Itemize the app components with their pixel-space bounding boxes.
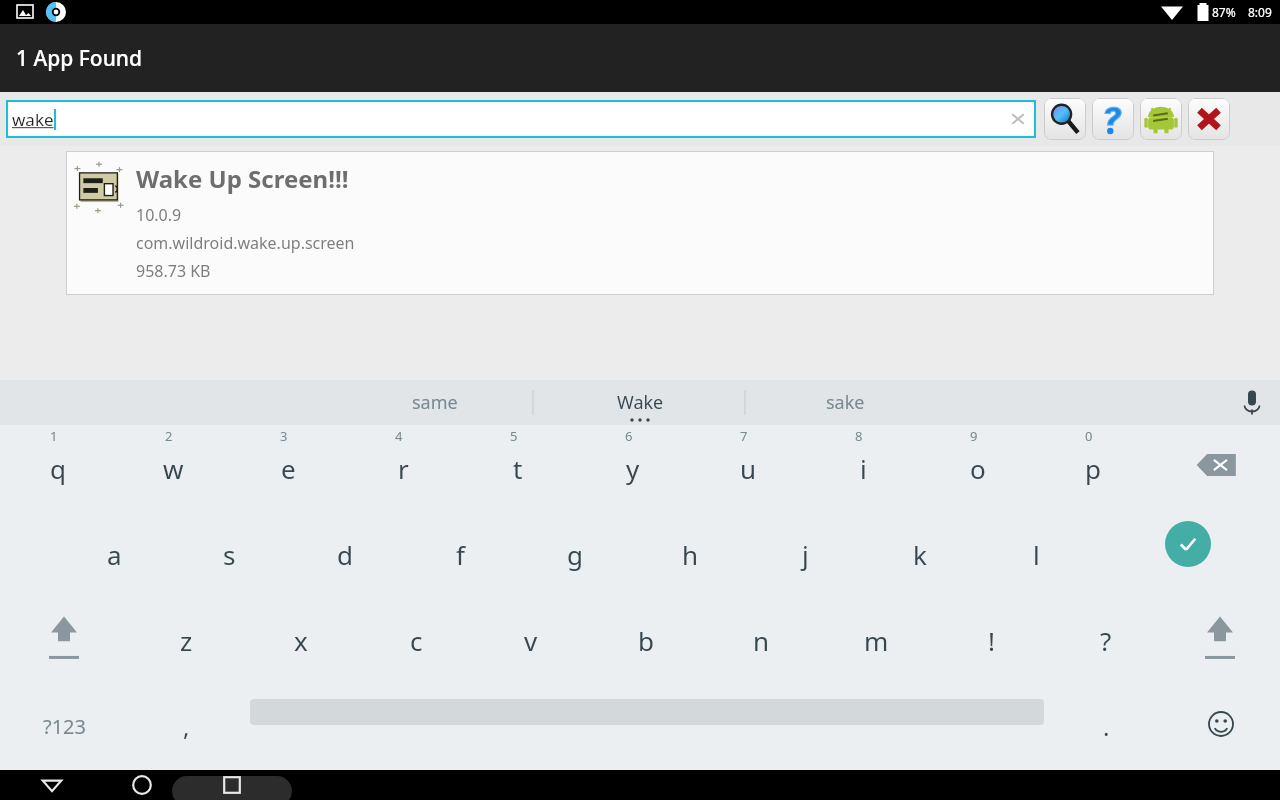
- button[interactable]: a: [76, 511, 152, 597]
- staticText: h: [682, 537, 699, 572]
- button[interactable]: d: [307, 511, 383, 597]
- staticText: 7: [740, 427, 748, 445]
- staticText: j: [802, 537, 809, 572]
- staticText: Wake: [617, 390, 664, 415]
- staticText: k: [913, 537, 927, 572]
- staticText: 1 App Found: [16, 44, 142, 73]
- staticText: 0: [1085, 427, 1093, 445]
- button[interactable]: same: [380, 380, 490, 425]
- staticText: i: [860, 451, 867, 486]
- button[interactable]: g: [537, 511, 613, 597]
- button[interactable]: Backspace: [1188, 443, 1244, 487]
- staticText: 2: [165, 427, 173, 445]
- staticText: 6: [625, 427, 633, 445]
- staticText: y: [626, 451, 640, 486]
- button[interactable]: Wake: [585, 380, 695, 425]
- staticText: b: [638, 623, 654, 658]
- button[interactable]: ?: [1068, 597, 1144, 683]
- button[interactable]: m: [838, 597, 914, 683]
- staticText: 5: [510, 427, 518, 445]
- button[interactable]: Recent apps: [208, 770, 256, 800]
- button[interactable]: w: [135, 425, 211, 511]
- button[interactable]: .: [1068, 683, 1144, 769]
- button[interactable]: k: [882, 511, 958, 597]
- button[interactable]: Help: [1092, 98, 1134, 140]
- staticText: t: [513, 451, 523, 486]
- staticText: v: [524, 623, 538, 658]
- button[interactable]: v: [493, 597, 569, 683]
- staticText: 87%: [1212, 4, 1236, 20]
- staticText: e: [281, 451, 296, 486]
- button[interactable]: p: [1055, 425, 1131, 511]
- staticText: q: [50, 451, 66, 486]
- staticText: n: [753, 623, 770, 658]
- staticText: 10.0.9: [136, 204, 182, 226]
- button[interactable]: s: [191, 511, 267, 597]
- button[interactable]: Back: [28, 770, 76, 800]
- staticText: o: [970, 451, 986, 486]
- button[interactable]: l: [998, 511, 1074, 597]
- staticText: 4: [395, 427, 403, 445]
- staticText: ?: [1100, 623, 1112, 658]
- staticText: z: [180, 623, 193, 658]
- button[interactable]: Shift: [36, 611, 92, 667]
- button[interactable]: c: [378, 597, 454, 683]
- button[interactable]: h: [652, 511, 728, 597]
- staticText: c: [410, 623, 423, 658]
- staticText: p: [1085, 451, 1101, 486]
- staticText: com.wildroid.wake.up.screen: [136, 232, 355, 254]
- staticText: s: [223, 537, 236, 572]
- staticText: 8:09: [1248, 4, 1272, 20]
- staticText: same: [412, 390, 458, 415]
- button[interactable]: Search: [1044, 98, 1086, 140]
- button[interactable]: Wake Up Screen!!!: [66, 151, 1214, 295]
- button[interactable]: i: [825, 425, 901, 511]
- staticText: 8: [855, 427, 863, 445]
- staticText: sake: [826, 390, 865, 415]
- button[interactable]: y: [595, 425, 671, 511]
- button[interactable]: Wildroid: [1140, 98, 1182, 140]
- staticText: 3: [280, 427, 288, 445]
- staticText: l: [1033, 537, 1040, 572]
- button[interactable]: Emoji: [1200, 703, 1242, 745]
- button[interactable]: Home: [118, 770, 166, 800]
- button[interactable]: sake: [790, 380, 900, 425]
- staticText: f: [456, 537, 465, 572]
- button[interactable]: u: [710, 425, 786, 511]
- staticText: Wake Up Screen!!!: [136, 162, 349, 195]
- staticText: w: [163, 451, 184, 486]
- staticText: a: [107, 537, 122, 572]
- button[interactable]: ,: [148, 683, 224, 769]
- button[interactable]: t: [480, 425, 556, 511]
- button[interactable]: Shift: [1192, 611, 1248, 667]
- staticText: 9: [970, 427, 978, 445]
- button[interactable]: f: [422, 511, 498, 597]
- staticText: d: [337, 537, 353, 572]
- button[interactable]: Enter: [1165, 521, 1211, 567]
- staticText: m: [864, 623, 889, 658]
- staticText: r: [398, 451, 409, 486]
- button[interactable]: wake: [6, 100, 1036, 138]
- button[interactable]: o: [940, 425, 1016, 511]
- button[interactable]: b: [608, 597, 684, 683]
- staticText: ,: [183, 710, 190, 743]
- button[interactable]: n: [723, 597, 799, 683]
- button[interactable]: !: [953, 597, 1029, 683]
- button[interactable]: Close: [1188, 98, 1230, 140]
- button[interactable]: ?123: [26, 683, 102, 769]
- button[interactable]: j: [767, 511, 843, 597]
- staticText: g: [567, 537, 583, 572]
- button[interactable]: Clear text: [1006, 107, 1030, 131]
- staticText: .: [1103, 710, 1110, 743]
- staticText: wake: [12, 108, 54, 131]
- staticText: x: [294, 623, 308, 658]
- staticText: 1: [50, 427, 58, 445]
- button[interactable]: r: [365, 425, 441, 511]
- button[interactable]: q: [20, 425, 96, 511]
- staticText: 958.73 KB: [136, 260, 211, 282]
- button[interactable]: e: [250, 425, 326, 511]
- button[interactable]: z: [148, 597, 224, 683]
- staticText: ?123: [43, 713, 86, 740]
- button[interactable]: x: [263, 597, 339, 683]
